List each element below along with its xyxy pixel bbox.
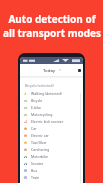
button[interactable]: Taxi/Uber (20, 139, 83, 146)
staticText: Taxi/Uber (31, 140, 47, 145)
button[interactable]: Train (20, 174, 83, 181)
staticText: all transport modes (3, 26, 101, 40)
staticText: Bicycle (31, 98, 43, 103)
button[interactable]: Carsharing (20, 146, 83, 153)
staticText: Motorcycling (31, 112, 53, 117)
button[interactable]: Scooter (20, 160, 83, 167)
staticText: Today (43, 67, 56, 73)
button[interactable]: Walking (detected) (20, 90, 83, 97)
staticText: E-bike (31, 105, 41, 110)
staticText: Car (31, 126, 37, 131)
staticText: Auto detection of (8, 12, 96, 26)
staticText: Bus (31, 168, 38, 173)
button[interactable]: Motorbike (20, 153, 83, 160)
button[interactable]: Electric car (20, 132, 83, 139)
staticText: Electric kick scooter (31, 119, 64, 124)
staticText: Scooter (31, 161, 44, 166)
button[interactable]: Electric kick scooter (20, 118, 83, 125)
button[interactable]: E-bike (20, 104, 83, 111)
button[interactable]: Motorcycling (20, 111, 83, 118)
staticText: Walking (detected) (31, 91, 62, 96)
staticText: Train (31, 175, 40, 180)
staticText: Electric car (31, 133, 49, 138)
button[interactable]: Account (78, 69, 81, 72)
staticText: Carsharing (31, 147, 50, 152)
button[interactable]: Bicycle (20, 97, 83, 104)
staticText: Bicycle (selected) (25, 83, 54, 88)
button[interactable]: Bus (20, 167, 83, 174)
button[interactable]: Car (20, 125, 83, 132)
staticText: Motorbike (31, 154, 49, 159)
